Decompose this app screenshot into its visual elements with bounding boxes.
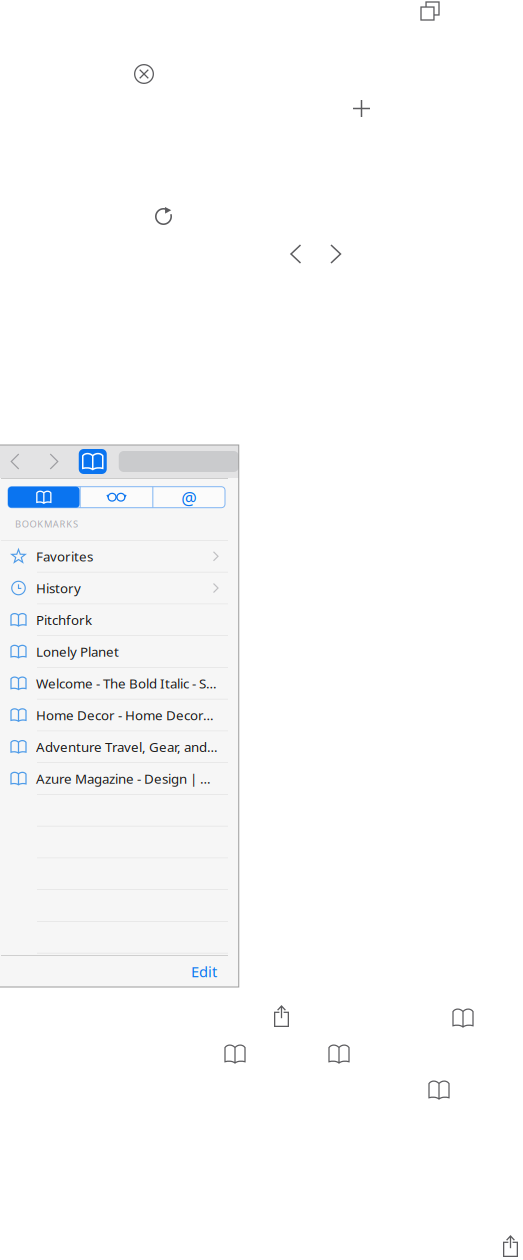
button[interactable]: Share: [274, 1006, 289, 1027]
button[interactable]: Pitchfork: [1, 604, 228, 636]
button[interactable]: Show all tabs: [421, 2, 439, 20]
button[interactable]: Bookmarks: [453, 1009, 473, 1027]
button[interactable]: History: [1, 572, 228, 604]
staticText: Pitchfork: [36, 611, 92, 629]
staticText: Home Decor - Home Decorati…: [36, 706, 219, 724]
button[interactable]: Edit: [180, 955, 228, 988]
staticText: Favorites: [36, 547, 93, 565]
button[interactable]: New tab: [353, 100, 370, 117]
staticText: Lonely Planet: [36, 643, 119, 660]
staticText: Welcome - The Bold Italic - Sa…: [36, 674, 219, 692]
button[interactable]: Reading List: [81, 487, 152, 508]
button[interactable]: Adventure Travel, Gear, and Fi…: [1, 731, 228, 763]
button[interactable]: Reload page: [155, 208, 172, 225]
button[interactable]: Share: [503, 1236, 518, 1257]
button[interactable]: Favorites: [1, 541, 228, 572]
button[interactable]: Bookmarks: [225, 1045, 245, 1063]
button[interactable]: Bookmarks: [8, 487, 80, 508]
button[interactable]: Bookmarks: [79, 449, 107, 474]
staticText: Edit: [191, 962, 217, 981]
staticText: Adventure Travel, Gear, and Fi…: [36, 738, 219, 756]
button[interactable]: Welcome - The Bold Italic - Sa…: [1, 668, 228, 699]
staticText: @: [181, 487, 197, 508]
staticText: BOOKMARKS: [15, 518, 78, 530]
button[interactable]: Lonely Planet: [1, 636, 228, 668]
button[interactable]: Forward: [331, 245, 340, 263]
button[interactable]: Stop loading: [134, 64, 154, 84]
button[interactable]: Back: [11, 454, 19, 469]
staticText: Azure Magazine - Design | Arc…: [36, 770, 219, 787]
button[interactable]: Bookmarks: [429, 1081, 449, 1099]
staticText: History: [36, 579, 81, 597]
button[interactable]: Azure Magazine - Design | Arc…: [1, 763, 228, 795]
button[interactable]: Home Decor - Home Decorati…: [1, 699, 228, 731]
button[interactable]: Bookmarks: [329, 1045, 349, 1063]
button[interactable]: Shared Links: [153, 487, 225, 508]
button[interactable]: Forward: [50, 454, 58, 469]
button[interactable]: Back: [291, 245, 300, 263]
